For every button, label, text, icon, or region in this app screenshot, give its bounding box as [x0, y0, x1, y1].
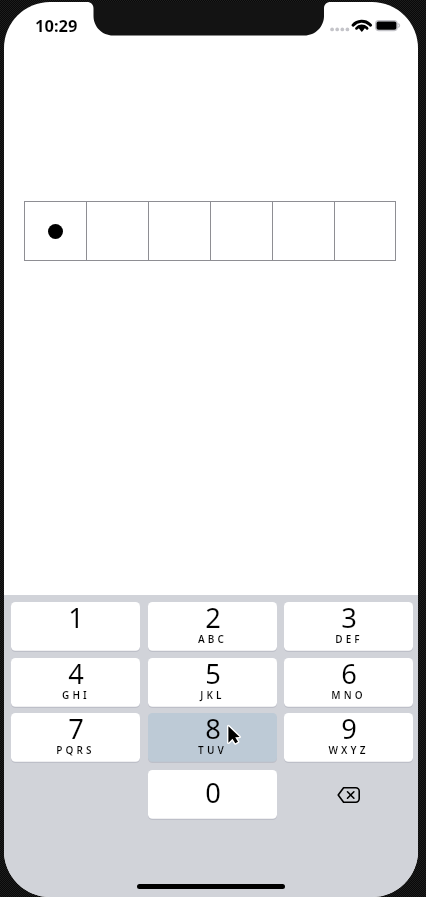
staticText: JKL — [200, 688, 225, 702]
staticText: ABC — [198, 632, 227, 646]
staticText: 10:29 — [35, 14, 78, 36]
button[interactable]: 3 — [284, 602, 413, 652]
button[interactable]: PIN digit 4 — [210, 201, 272, 261]
button[interactable]: 6 — [284, 658, 413, 708]
staticText: 9 — [341, 710, 357, 747]
button[interactable]: 1 — [11, 602, 140, 652]
button[interactable]: PIN digit 1 — [24, 201, 86, 261]
button[interactable]: Delete — [284, 770, 413, 819]
button[interactable]: 9 — [284, 713, 413, 763]
staticText: 7 — [68, 710, 84, 747]
staticText: 1 — [68, 599, 84, 636]
staticText: 2 — [205, 599, 221, 636]
staticText: MNO — [331, 688, 366, 702]
staticText: 4 — [68, 655, 84, 692]
staticText: 6 — [341, 655, 357, 692]
staticText: 5 — [205, 655, 221, 692]
button[interactable]: 5 — [148, 658, 277, 708]
staticText: TUV — [198, 743, 227, 757]
button[interactable]: PIN digit 6 — [334, 201, 396, 261]
button[interactable]: PIN digit 2 — [86, 201, 148, 261]
staticText: 0 — [205, 774, 221, 811]
staticText: GHI — [62, 688, 90, 702]
staticText: WXYZ — [328, 743, 369, 757]
staticText: 8 — [205, 710, 221, 747]
staticText: PQRS — [56, 743, 95, 757]
button[interactable]: 7 — [11, 713, 140, 763]
staticText: 3 — [341, 599, 357, 636]
button[interactable]: 4 — [11, 658, 140, 708]
button[interactable]: PIN digit 3 — [148, 201, 210, 261]
button[interactable]: PIN digit 5 — [272, 201, 334, 261]
staticText: DEF — [335, 632, 363, 646]
button[interactable]: 0 — [148, 770, 277, 820]
button[interactable]: 8 — [148, 713, 277, 763]
button[interactable]: 2 — [148, 602, 277, 652]
